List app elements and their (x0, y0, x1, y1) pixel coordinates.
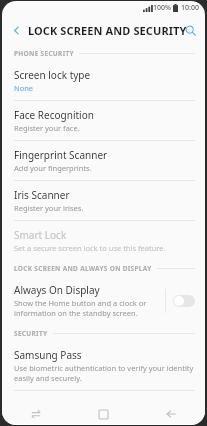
staticText: Add your fingerprints. (14, 163, 92, 173)
staticText: Face Recognition (14, 108, 94, 122)
staticText: Smart Lock (14, 228, 67, 242)
staticText: Show the Home button and a clock or (14, 298, 147, 308)
staticText: PHONE SECURITY (14, 49, 74, 58)
button[interactable]: Fingerprint Scanner (2, 141, 205, 180)
staticText: SECURITY (14, 329, 48, 338)
staticText: Set a secure screen lock to use this fea… (14, 243, 166, 253)
button[interactable]: Recents (2, 403, 69, 425)
staticText: easily and securely. (14, 373, 82, 383)
button[interactable]: Back (6, 20, 26, 40)
staticText: None (14, 83, 34, 93)
button[interactable]: Iris Scanner (2, 181, 205, 220)
button[interactable]: Home (69, 403, 137, 425)
button[interactable]: Samsung Pass (2, 341, 205, 390)
staticText: 100% (153, 3, 171, 13)
staticText: LOCK SCREEN AND ALWAYS ON DISPLAY (14, 264, 152, 273)
staticText: Always On Display (14, 283, 100, 297)
staticText: Iris Scanner (14, 188, 70, 202)
button[interactable]: Screen lock type (2, 61, 205, 100)
staticText: Register your face. (14, 123, 80, 133)
staticText: Screen lock type (14, 68, 91, 82)
button[interactable]: Always On Display (2, 276, 205, 325)
button: Smart Lock (2, 221, 205, 260)
button[interactable]: Search (180, 20, 200, 40)
button[interactable]: Back (137, 403, 205, 425)
button[interactable]: Always On Display toggle (173, 295, 195, 307)
staticText: Samsung Pass (14, 348, 82, 362)
staticText: information on the standby screen. (14, 308, 138, 318)
staticText: 10:00 (181, 3, 199, 13)
staticText: LOCK SCREEN AND SECURITY (28, 23, 187, 38)
staticText: Register your irises. (14, 203, 84, 213)
staticText: Fingerprint Scanner (14, 148, 108, 162)
button[interactable]: Face Recognition (2, 101, 205, 140)
staticText: Use biometric authentication to verify y… (14, 363, 194, 373)
